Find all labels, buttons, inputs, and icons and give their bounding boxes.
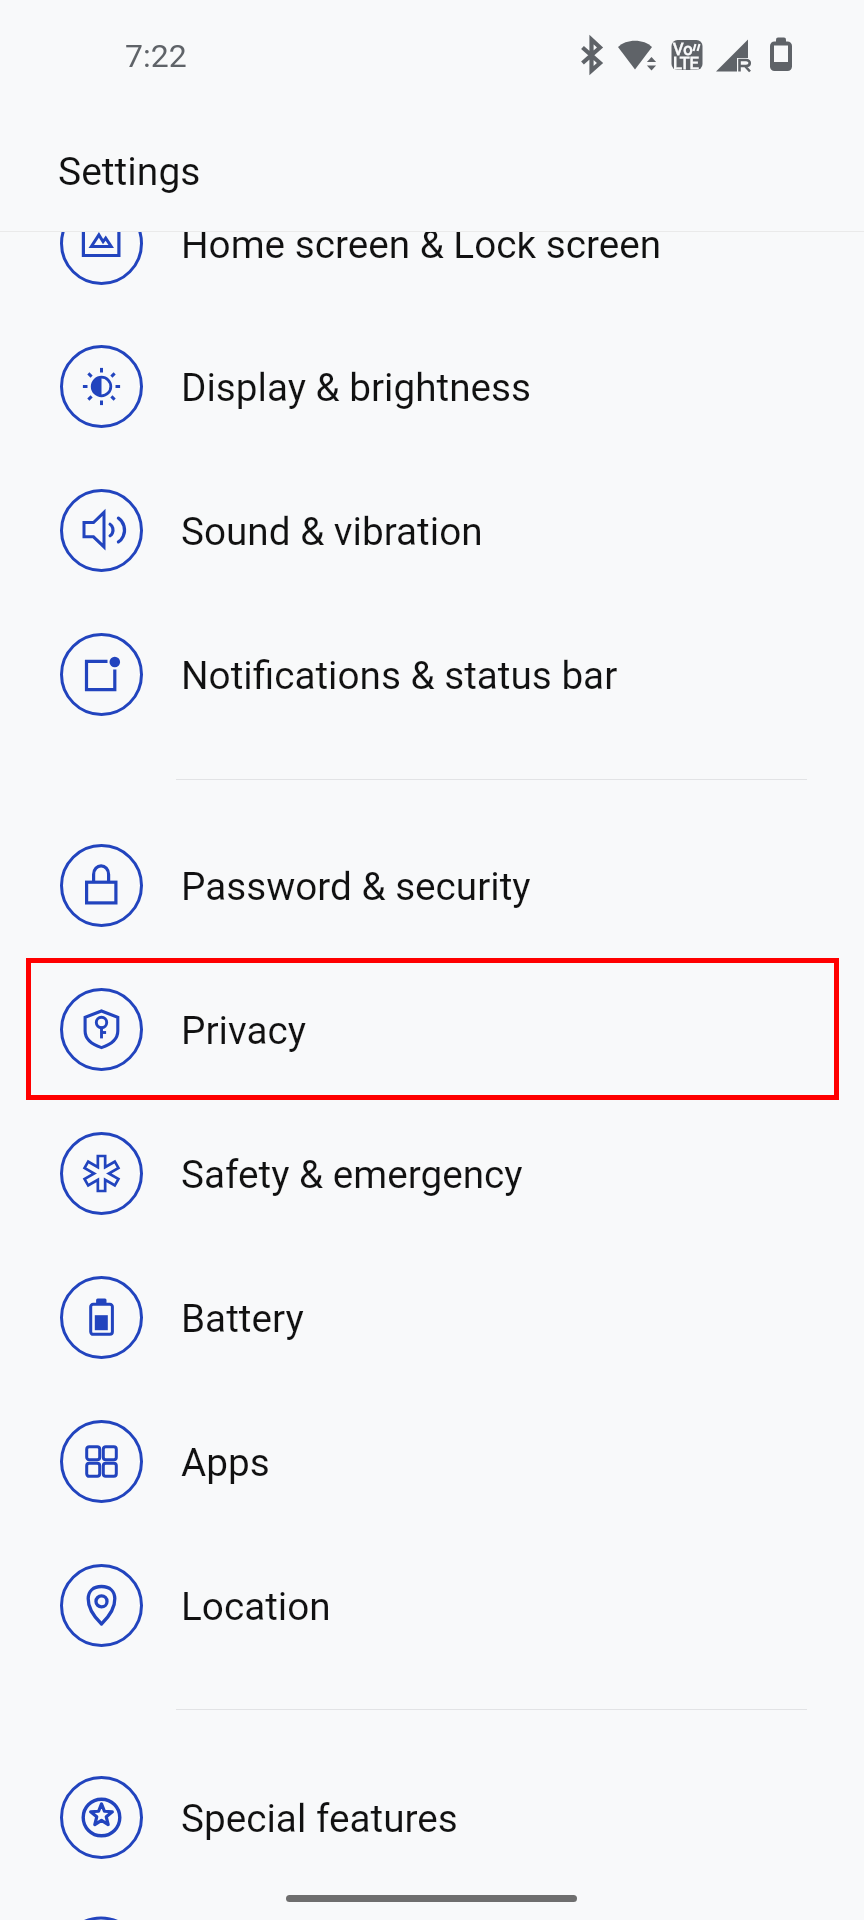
staticText: Vo <box>673 40 693 59</box>
button[interactable]: Home screen & Lock screen <box>0 232 864 315</box>
button[interactable]: Battery <box>0 1245 864 1389</box>
staticText: Home screen & Lock screen <box>181 232 662 267</box>
staticText: Notifications & status bar <box>181 653 618 698</box>
staticText: 7:22 <box>125 37 187 75</box>
staticText: Safety & emergency <box>181 1152 523 1197</box>
staticText: Apps <box>181 1440 270 1485</box>
button[interactable]: Apps <box>0 1389 864 1533</box>
staticText: Location <box>181 1584 331 1629</box>
staticText: Sound & vibration <box>181 509 483 554</box>
button[interactable]: Privacy <box>0 957 864 1101</box>
staticText: Privacy <box>181 1008 306 1053</box>
button[interactable]: Display & brightness <box>0 314 864 458</box>
button[interactable]: Special features <box>0 1745 864 1889</box>
staticText: Special features <box>181 1796 458 1841</box>
staticText: Settings <box>58 149 201 195</box>
button[interactable]: Password & security <box>0 813 864 957</box>
button[interactable]: Location <box>0 1533 864 1677</box>
staticText: Battery <box>181 1296 304 1341</box>
button[interactable]: Safety & emergency <box>0 1101 864 1245</box>
staticText: Password & security <box>181 864 531 909</box>
button[interactable]: Sound & vibration <box>0 458 864 602</box>
staticText: Display & brightness <box>181 365 531 410</box>
staticText: LTE <box>673 54 699 73</box>
button[interactable]: Notifications & status bar <box>0 602 864 746</box>
